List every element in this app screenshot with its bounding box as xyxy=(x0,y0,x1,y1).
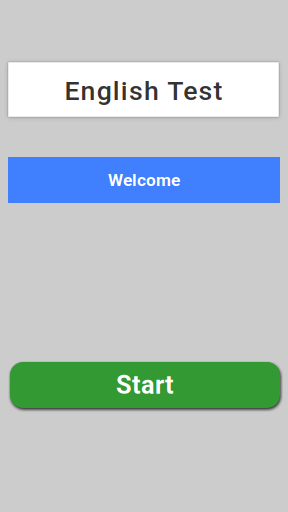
staticText: English Test xyxy=(64,75,223,107)
button[interactable]: Start xyxy=(10,362,280,408)
staticText: Welcome xyxy=(108,170,180,190)
staticText: Start xyxy=(116,370,174,400)
